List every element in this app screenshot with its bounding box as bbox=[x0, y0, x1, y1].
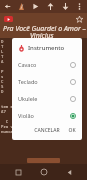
button[interactable]: Back bbox=[2, 1, 13, 12]
staticText: D bbox=[1, 39, 86, 44]
staticText: L bbox=[1, 49, 86, 54]
staticText: P bbox=[1, 69, 86, 74]
button[interactable]: Transpose up bbox=[45, 1, 56, 12]
staticText bbox=[1, 64, 86, 69]
button[interactable]: Teclado bbox=[12, 73, 82, 90]
button[interactable]: Ukulele bbox=[12, 90, 82, 107]
staticText: Pra Você Guardei o Amor – bbox=[3, 24, 86, 34]
button[interactable]: Play bbox=[30, 1, 41, 12]
staticText: CANCELAR bbox=[34, 127, 60, 134]
button[interactable]: Back bbox=[61, 164, 77, 180]
staticText: C A bbox=[1, 119, 86, 124]
button[interactable]: OK bbox=[67, 126, 77, 135]
staticText: nunca quis mostrar bbox=[1, 129, 86, 134]
staticText: T bbox=[1, 44, 86, 49]
staticText: C bbox=[1, 79, 86, 84]
button[interactable]: Home bbox=[36, 164, 52, 180]
staticText: OK bbox=[68, 127, 76, 134]
button[interactable]: Recents bbox=[10, 164, 26, 180]
staticText: D bbox=[1, 89, 86, 94]
button[interactable]: Metronome bbox=[16, 1, 27, 12]
staticText: tem entregar e repartir bbox=[1, 104, 86, 109]
staticText bbox=[1, 94, 86, 99]
button[interactable]: More options bbox=[74, 1, 85, 12]
button[interactable]: Violão bbox=[12, 107, 82, 124]
staticText: Violão bbox=[18, 112, 70, 119]
staticText: Cavaco bbox=[18, 61, 70, 68]
button[interactable]: Favorite bbox=[75, 15, 84, 24]
staticText bbox=[1, 114, 86, 119]
button[interactable]: Cavaco bbox=[12, 56, 82, 73]
staticText: Pra você guardei o amor que bbox=[1, 124, 86, 129]
staticText: Ukulele bbox=[18, 95, 70, 102]
staticText: T bbox=[1, 54, 86, 59]
staticText: S bbox=[1, 84, 86, 89]
staticText: Vinícius bbox=[30, 31, 54, 41]
staticText: Teclado bbox=[18, 78, 70, 85]
button[interactable]: CANCELAR bbox=[33, 126, 61, 135]
button[interactable]: Transpose down bbox=[60, 1, 71, 12]
staticText: Em7 A7 G7/4 bbox=[1, 99, 86, 104]
staticText: Instrumento bbox=[28, 44, 65, 52]
button[interactable]: Video bbox=[4, 16, 13, 22]
staticText: A7 bbox=[1, 109, 86, 114]
staticText: A bbox=[1, 59, 86, 64]
staticText: s bbox=[1, 74, 86, 79]
